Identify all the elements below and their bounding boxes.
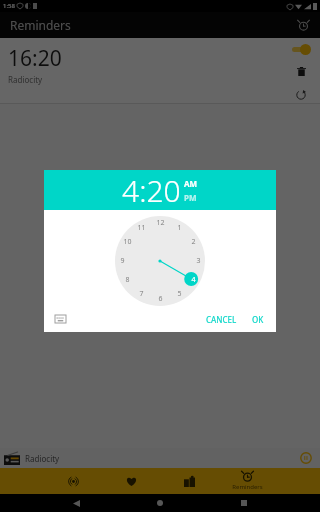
staticText: Reminders bbox=[232, 483, 263, 491]
staticText: 11 bbox=[137, 223, 146, 233]
staticText: Reminders bbox=[10, 17, 71, 33]
button[interactable]: Repeat bbox=[293, 87, 309, 103]
staticText: 5 bbox=[177, 289, 182, 299]
staticText: 12 bbox=[156, 218, 165, 228]
button[interactable]: Keyboard input bbox=[52, 311, 68, 327]
button[interactable]: Delete bbox=[293, 63, 309, 79]
button[interactable]: PM bbox=[184, 192, 197, 203]
button[interactable]: Add reminder bbox=[294, 16, 312, 34]
button[interactable]: Reminders bbox=[218, 468, 276, 494]
button[interactable]: Favourites bbox=[102, 468, 160, 494]
button[interactable]: OK bbox=[248, 311, 268, 328]
button[interactable]: AM bbox=[184, 178, 198, 189]
button[interactable]: Stations bbox=[44, 468, 102, 494]
button[interactable]: Home bbox=[152, 495, 168, 511]
button[interactable]: Recents bbox=[236, 495, 252, 511]
staticText: 1 bbox=[177, 223, 182, 233]
staticText: 6 bbox=[158, 294, 163, 304]
button[interactable]: Radiocity bbox=[0, 448, 320, 468]
staticText: 10 bbox=[123, 237, 132, 247]
button[interactable]: 16:20 bbox=[0, 38, 320, 104]
staticText: OK bbox=[252, 314, 264, 325]
staticText: 4:20 bbox=[122, 170, 181, 210]
staticText: CANCEL bbox=[206, 314, 237, 325]
staticText: 7 bbox=[139, 289, 144, 299]
button[interactable]: CANCEL bbox=[202, 311, 241, 328]
staticText: 4 bbox=[191, 275, 196, 285]
staticText: 2 bbox=[191, 237, 196, 247]
button[interactable]: Play bbox=[299, 451, 313, 465]
staticText: 9 bbox=[120, 256, 125, 266]
staticText: 1:58 bbox=[3, 2, 15, 10]
staticText: 16:20 bbox=[8, 44, 62, 73]
button[interactable]: Back bbox=[68, 495, 84, 511]
button[interactable]: 4:20 bbox=[44, 170, 276, 210]
staticText: 3 bbox=[196, 256, 201, 266]
staticText: Radiocity bbox=[25, 453, 60, 464]
staticText: Radiocity bbox=[8, 74, 43, 85]
button[interactable]: Podcasts bbox=[160, 468, 218, 494]
staticText: 8 bbox=[125, 275, 130, 285]
button[interactable]: Toggle alarm bbox=[290, 43, 312, 55]
